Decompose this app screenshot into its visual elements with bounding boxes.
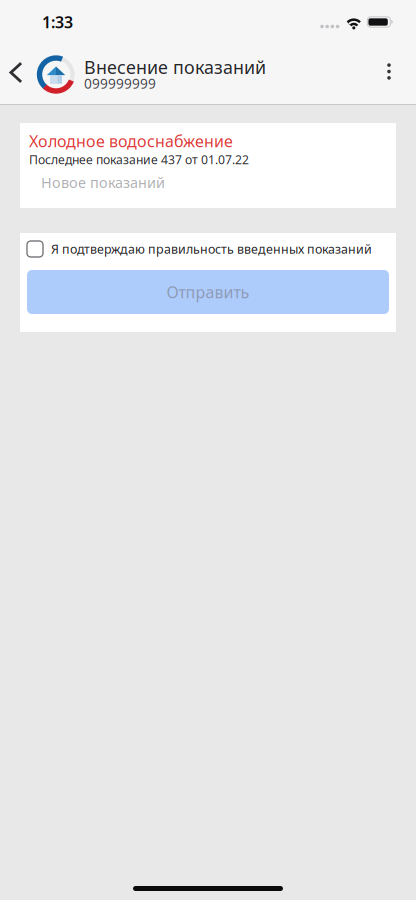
staticText: Новое показаний xyxy=(41,173,165,192)
button[interactable]: Back xyxy=(2,44,30,104)
staticText: 099999999 xyxy=(84,74,156,93)
staticText: Отправить xyxy=(166,281,249,303)
button[interactable]: Новое показаний xyxy=(29,167,395,198)
staticText: 1:33 xyxy=(42,11,73,33)
button[interactable]: More options xyxy=(372,44,406,104)
staticText: Я подтверждаю правильность введенных пок… xyxy=(51,241,372,257)
staticText: Холодное водоснабжение xyxy=(29,130,233,152)
staticText: Последнее показание 437 от 01.07.22 xyxy=(29,151,249,168)
button[interactable]: Я подтверждаю правильность введенных пок… xyxy=(27,240,389,258)
button[interactable]: Отправить xyxy=(27,270,389,314)
staticText: Внесение показаний xyxy=(84,55,266,79)
